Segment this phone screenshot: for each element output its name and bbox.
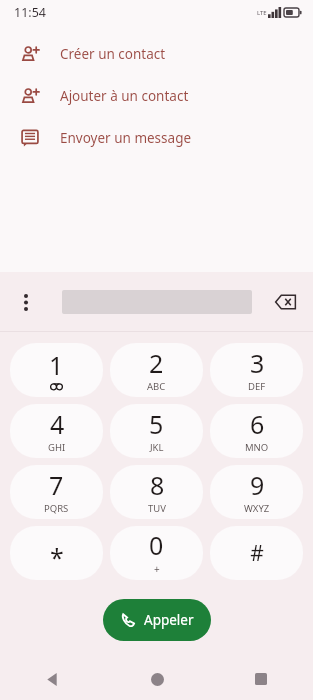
button[interactable]: Créer un contact xyxy=(0,33,313,75)
staticText: 8 xyxy=(150,468,165,502)
staticText: 11:54 xyxy=(14,4,46,21)
staticText: 7 xyxy=(49,468,64,502)
staticText: # xyxy=(250,539,264,568)
staticText: 2 xyxy=(149,346,164,380)
staticText: 3 xyxy=(250,346,265,380)
staticText: 4 xyxy=(50,407,65,441)
staticText: ABC xyxy=(147,380,166,393)
button[interactable]: Appeler xyxy=(103,599,211,641)
staticText: + xyxy=(154,562,160,576)
staticText: MNO xyxy=(245,441,269,454)
button[interactable]: Envoyer un message xyxy=(0,117,313,159)
button[interactable]: 8 xyxy=(110,465,203,519)
staticText: PQRS xyxy=(44,502,69,515)
staticText: * xyxy=(50,540,64,574)
staticText: TUV xyxy=(148,502,166,515)
staticText: LTE xyxy=(257,9,267,17)
button[interactable]: Backspace xyxy=(268,285,302,319)
button[interactable]: Recent apps xyxy=(209,658,313,700)
staticText: Créer un contact xyxy=(60,45,166,63)
button[interactable]: 7 xyxy=(10,465,103,519)
button[interactable]: 1 xyxy=(10,343,103,397)
button[interactable]: 0 xyxy=(110,526,203,580)
staticText: 0 xyxy=(149,528,164,562)
button[interactable]: 9 xyxy=(210,465,303,519)
staticText: DEF xyxy=(248,380,266,393)
button[interactable]: 3 xyxy=(210,343,303,397)
staticText: Ajouter à un contact xyxy=(60,87,189,105)
button[interactable]: Home xyxy=(105,658,209,700)
button[interactable]: # xyxy=(210,526,303,580)
button[interactable]: Ajouter à un contact xyxy=(0,75,313,117)
staticText: Envoyer un message xyxy=(60,129,192,147)
staticText: WXYZ xyxy=(244,502,270,515)
staticText: 1 xyxy=(49,348,64,382)
button[interactable]: 6 xyxy=(210,404,303,458)
staticText: 9 xyxy=(250,468,265,502)
staticText: GHI xyxy=(48,441,66,454)
staticText: Appeler xyxy=(144,611,194,629)
button[interactable]: More options xyxy=(12,288,40,316)
button[interactable]: 2 xyxy=(110,343,203,397)
staticText: JKL xyxy=(150,441,164,454)
button[interactable]: 4 xyxy=(10,404,103,458)
staticText: 5 xyxy=(149,407,164,441)
button[interactable]: * xyxy=(10,526,103,580)
button[interactable]: 5 xyxy=(110,404,203,458)
staticText: 6 xyxy=(250,407,265,441)
button[interactable]: Back xyxy=(0,658,105,700)
